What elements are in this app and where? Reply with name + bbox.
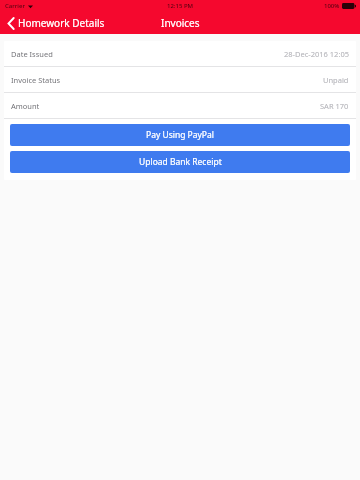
other: Back xyxy=(8,18,14,29)
staticText: Pay Using PayPal xyxy=(146,129,214,141)
staticText: Invoices xyxy=(161,16,200,30)
staticText: Invoice Status xyxy=(11,75,61,85)
staticText: 100% xyxy=(324,2,340,10)
button[interactable]: Date Issued xyxy=(4,41,356,66)
staticText: Unpaid xyxy=(323,75,349,85)
staticText: Amount xyxy=(11,101,40,111)
staticText: Date Issued xyxy=(11,49,53,59)
button[interactable]: Invoice Status xyxy=(4,67,356,92)
button[interactable]: Amount xyxy=(4,93,356,118)
staticText: Carrier xyxy=(5,2,25,10)
button[interactable]: Upload Bank Receipt xyxy=(10,151,350,173)
button[interactable]: Back xyxy=(0,13,113,33)
staticText: 12:15 PM xyxy=(167,2,194,10)
staticText: 28-Dec-2016 12:05 xyxy=(284,49,349,59)
staticText: Homework Details xyxy=(18,16,105,30)
staticText: SAR 170 xyxy=(320,101,349,111)
button[interactable]: Pay Using PayPal xyxy=(10,124,350,146)
staticText: Upload Bank Receipt xyxy=(139,156,222,168)
